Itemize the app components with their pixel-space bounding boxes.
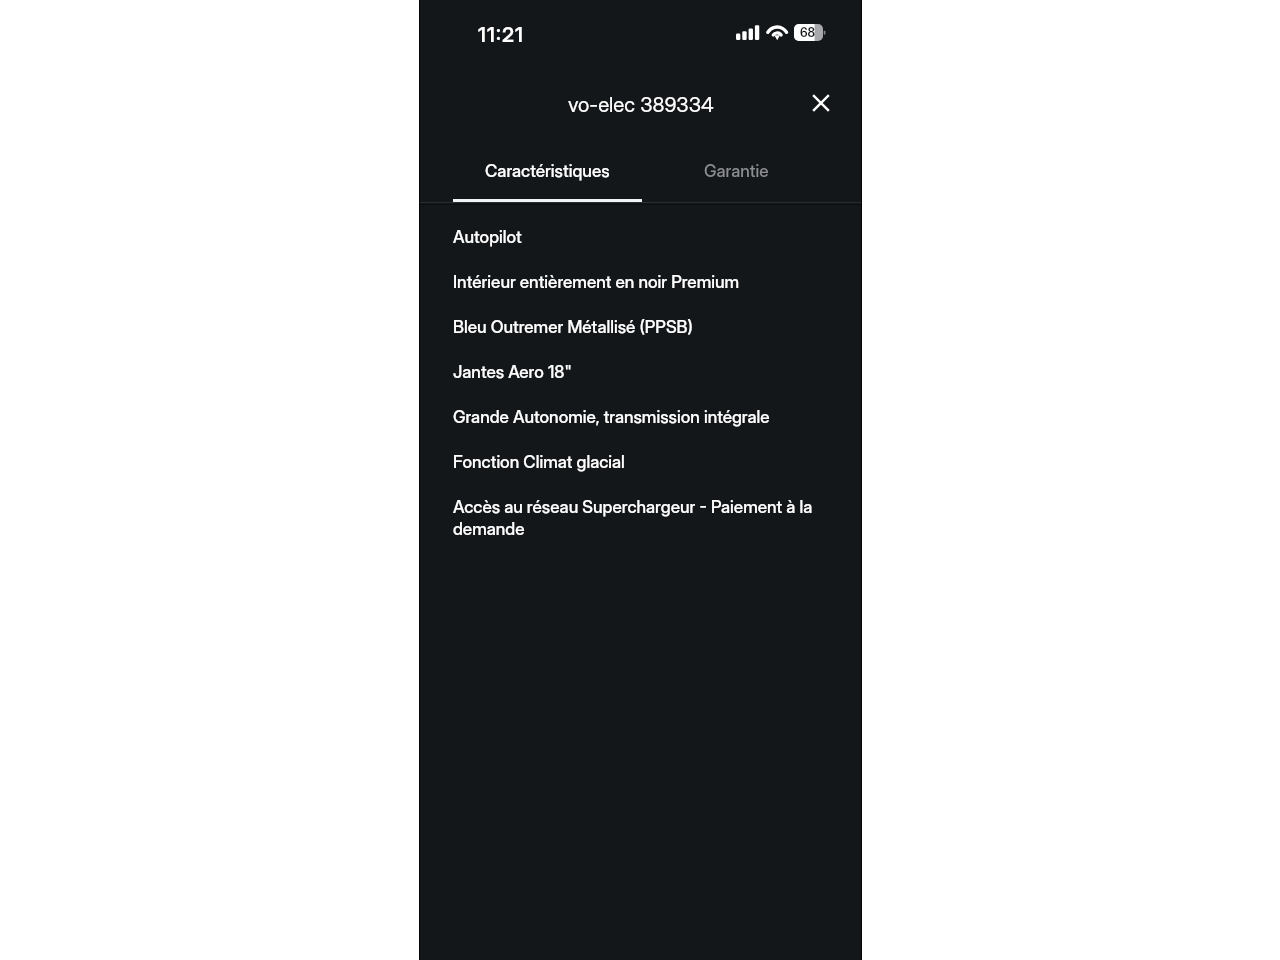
staticText: 11:21 bbox=[478, 22, 524, 47]
staticText: vo-elec 389334 bbox=[568, 91, 714, 117]
button[interactable]: Jantes Aero 18" bbox=[419, 360, 862, 405]
staticText: Bleu Outremer Métallisé (PPSB) bbox=[453, 315, 693, 337]
button[interactable]: Close bbox=[799, 81, 843, 125]
staticText: Garantie bbox=[704, 160, 769, 181]
button[interactable]: Autopilot bbox=[419, 225, 862, 270]
staticText: Intérieur entièrement en noir Premium bbox=[453, 270, 740, 292]
staticText: Jantes Aero 18" bbox=[453, 360, 572, 382]
staticText: Caractéristiques bbox=[485, 160, 610, 181]
staticText: Autopilot bbox=[453, 225, 522, 247]
staticText: Fonction Climat glacial bbox=[453, 450, 625, 472]
staticText: Grande Autonomie, transmission intégrale bbox=[453, 405, 770, 427]
button[interactable]: Garantie bbox=[641, 148, 863, 192]
staticText: 68 bbox=[800, 26, 816, 40]
button[interactable]: Bleu Outremer Métallisé (PPSB) bbox=[419, 315, 862, 360]
button[interactable]: Intérieur entièrement en noir Premium bbox=[419, 270, 862, 315]
button[interactable]: Grande Autonomie, transmission intégrale bbox=[419, 405, 862, 450]
button[interactable]: Caractéristiques bbox=[419, 148, 641, 192]
staticText: Accès au réseau Superchargeur - Paiement… bbox=[453, 495, 826, 539]
button[interactable]: Fonction Climat glacial bbox=[419, 450, 862, 495]
button[interactable]: Accès au réseau Superchargeur - Paiement… bbox=[419, 495, 862, 540]
